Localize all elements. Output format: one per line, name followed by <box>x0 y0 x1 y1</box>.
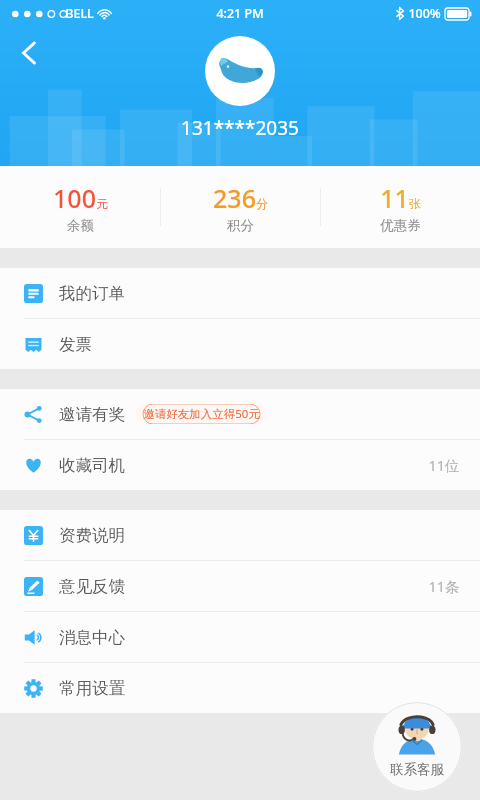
staticText: 邀请有奖 <box>59 404 125 425</box>
staticText: 收藏司机 <box>59 455 125 476</box>
button[interactable]: 收藏司机 <box>0 440 480 490</box>
staticText: 发票 <box>59 334 92 355</box>
staticText: 131****2035 <box>181 115 299 141</box>
button[interactable]: 联系客服 Contact customer service <box>372 702 462 792</box>
staticText: 常用设置 <box>59 678 125 699</box>
button[interactable]: 236 <box>161 175 320 240</box>
staticText: 优惠券 <box>380 217 421 234</box>
button[interactable]: Profile avatar <box>205 36 275 106</box>
staticText: 100% <box>408 5 441 22</box>
staticText: 消息中心 <box>59 627 125 648</box>
staticText: 我的订单 <box>59 283 125 304</box>
staticText: 11位 <box>428 455 460 475</box>
staticText: 意见反馈 <box>59 576 125 597</box>
staticText: 积分 <box>227 217 254 234</box>
staticText: 100 <box>53 181 96 215</box>
staticText: BELL <box>65 5 94 22</box>
staticText: 11条 <box>428 576 460 596</box>
staticText: 元 <box>96 196 108 211</box>
button[interactable]: 我的订单 <box>0 268 480 318</box>
staticText: 邀请好友加入立得50元 <box>143 406 260 422</box>
staticText: 236 <box>213 181 256 215</box>
button[interactable]: 发票 <box>0 319 480 369</box>
staticText: 余额 <box>67 217 94 234</box>
button[interactable]: 消息中心 <box>0 612 480 662</box>
staticText: 联系客服 <box>390 761 444 778</box>
staticText: 张 <box>409 196 421 211</box>
staticText: 4:21 PM <box>216 5 264 22</box>
button[interactable]: 资费说明 <box>0 510 480 560</box>
button[interactable]: 邀请有奖 <box>0 389 480 439</box>
staticText: 资费说明 <box>59 525 125 546</box>
button[interactable]: 100 <box>0 175 160 240</box>
button[interactable]: 意见反馈 <box>0 561 480 611</box>
button[interactable]: Back <box>6 30 52 76</box>
staticText: 11 <box>380 181 409 215</box>
button[interactable]: 常用设置 <box>0 663 480 713</box>
button[interactable]: 11 <box>321 175 480 240</box>
staticText: 分 <box>256 196 268 211</box>
